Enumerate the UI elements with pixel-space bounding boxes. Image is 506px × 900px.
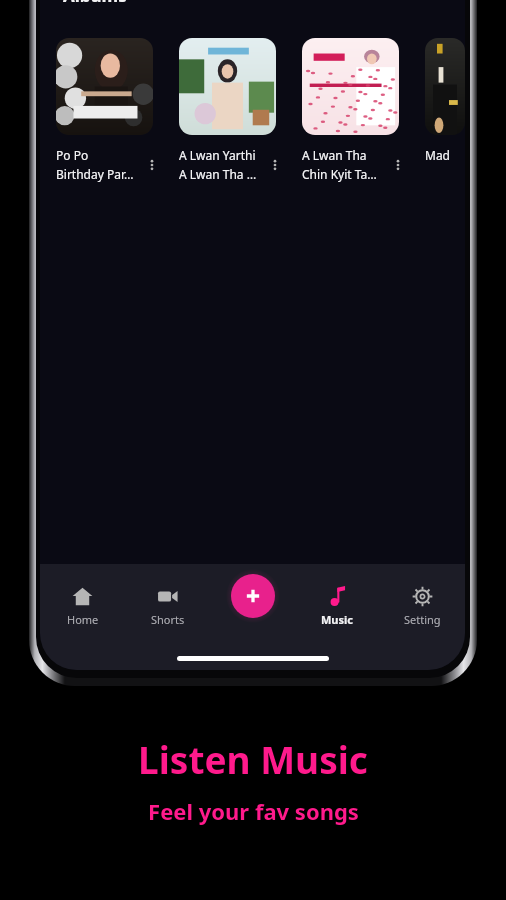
button[interactable]: More options <box>265 155 285 175</box>
staticText: A Lwan Yarthi <box>179 147 256 163</box>
staticText: Home <box>67 612 99 627</box>
button[interactable]: More options <box>388 155 408 175</box>
button[interactable]: A Lwan Tha <box>302 38 408 182</box>
staticText: Chin Kyit Ta… <box>302 166 377 182</box>
staticText: Birthday Par… <box>56 166 134 182</box>
staticText: A Lwan Tha <box>302 147 367 163</box>
button[interactable]: Mad <box>425 38 465 163</box>
button[interactable]: Add <box>231 574 275 618</box>
staticText: Po Po <box>56 147 89 163</box>
staticText: Albums <box>63 0 127 7</box>
button[interactable]: A Lwan Yarthi <box>179 38 285 182</box>
staticText: Listen Music <box>138 734 368 784</box>
staticText: Feel your fav songs <box>148 796 359 826</box>
button[interactable]: Music <box>295 584 380 629</box>
button[interactable]: Setting <box>380 584 465 629</box>
button[interactable]: Home <box>40 584 125 629</box>
staticText: A Lwan Tha … <box>179 166 257 182</box>
staticText: Shorts <box>151 612 185 627</box>
staticText: Setting <box>404 612 441 627</box>
staticText: Music <box>321 612 354 627</box>
staticText: Mad <box>425 147 450 163</box>
button[interactable]: Po Po <box>56 38 162 182</box>
button[interactable]: More options <box>142 155 162 175</box>
button[interactable]: Shorts <box>125 584 210 629</box>
